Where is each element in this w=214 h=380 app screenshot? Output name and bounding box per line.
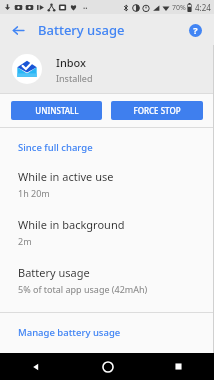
button[interactable]: Help — [184, 19, 206, 41]
staticText: 4:24 — [195, 2, 211, 13]
staticText: While in background — [18, 217, 125, 232]
staticText: FORCE STOP — [133, 105, 181, 116]
staticText: Inbox — [56, 55, 87, 70]
staticText: ·· — [83, 2, 88, 13]
button[interactable]: Back — [0, 353, 72, 380]
staticText: ? — [193, 24, 198, 36]
button[interactable]: Recent apps — [143, 353, 214, 380]
button[interactable]: Inbox — [0, 45, 214, 93]
staticText: UNINSTALL — [35, 105, 79, 116]
button[interactable]: While in background — [0, 208, 214, 256]
button[interactable]: Back — [6, 18, 30, 42]
button[interactable]: UNINSTALL — [11, 101, 102, 120]
staticText: Installed — [56, 72, 93, 84]
button[interactable]: Home — [72, 353, 143, 380]
staticText: Battery usage — [38, 21, 125, 39]
button[interactable]: While in active use — [0, 160, 214, 208]
staticText: 2m — [18, 235, 32, 247]
staticText: 1h 20m — [18, 187, 50, 199]
staticText: 70% — [172, 3, 186, 13]
staticText: While in active use — [18, 169, 114, 184]
staticText: Manage battery usage — [18, 326, 121, 339]
staticText: Since full charge — [18, 141, 93, 154]
staticText: Battery usage — [18, 265, 90, 280]
staticText: 5% of total app usage (42mAh) — [18, 283, 148, 295]
button[interactable]: FORCE STOP — [111, 101, 203, 120]
button[interactable]: Battery usage — [0, 256, 214, 304]
